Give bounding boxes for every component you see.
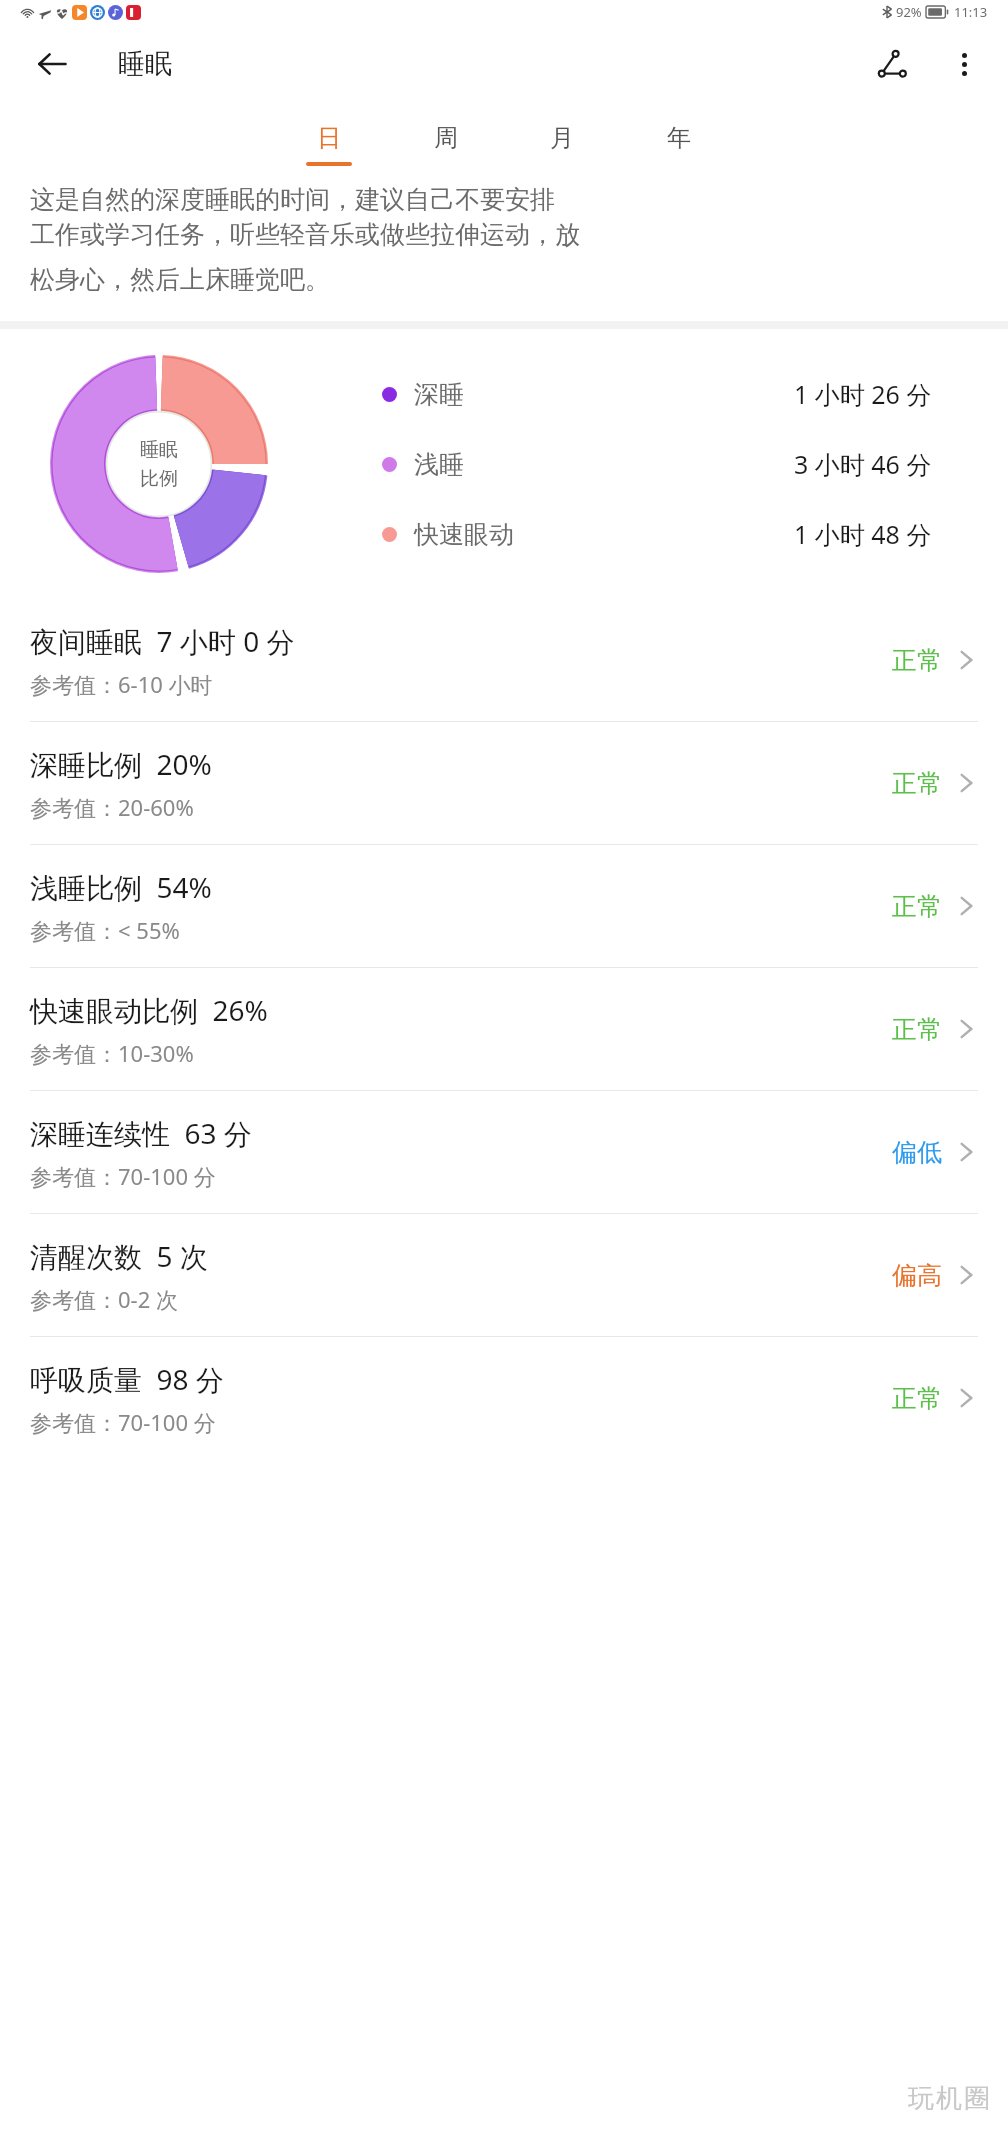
- button[interactable]: Share: [866, 38, 918, 90]
- button[interactable]: 日: [284, 104, 374, 184]
- staticText: 参考值：70-100 分: [30, 1407, 216, 1437]
- button[interactable]: 周: [401, 104, 491, 184]
- staticText: 睡眠: [118, 47, 172, 81]
- staticText: 浅睡比例 54%: [30, 868, 212, 906]
- staticText: 呼吸质量 98 分: [30, 1360, 224, 1398]
- button[interactable]: 月: [517, 104, 607, 184]
- staticText: 参考值：70-100 分: [30, 1161, 216, 1191]
- staticText: 参考值：< 55%: [30, 915, 180, 945]
- staticText: 日: [317, 123, 341, 153]
- staticText: 参考值：6-10 小时: [30, 669, 213, 699]
- staticText: 圈: [964, 2082, 990, 2115]
- staticText: 玩: [908, 2082, 934, 2115]
- staticText: 这是自然的深度睡眠的时间，建议自己不要安排: [30, 184, 555, 215]
- staticText: 92%: [896, 3, 922, 21]
- staticText: 睡眠: [140, 438, 178, 462]
- staticText: 偏高: [892, 1260, 942, 1291]
- staticText: 快速眼动比例 26%: [30, 991, 268, 1029]
- staticText: 周: [434, 123, 458, 153]
- button[interactable]: 夜间睡眠 7 小时 0 分: [0, 599, 1008, 721]
- staticText: 正常: [892, 891, 942, 922]
- button[interactable]: More options: [942, 42, 986, 86]
- staticText: 机: [936, 2082, 962, 2115]
- button[interactable]: 浅睡比例 54%: [0, 845, 1008, 967]
- button[interactable]: 快速眼动比例 26%: [0, 968, 1008, 1090]
- staticText: 夜间睡眠 7 小时 0 分: [30, 622, 295, 660]
- staticText: 参考值：0-2 次: [30, 1284, 178, 1314]
- staticText: 正常: [892, 1383, 942, 1414]
- button[interactable]: Back: [30, 42, 74, 86]
- staticText: 11:13: [954, 3, 988, 21]
- staticText: 1 小时 48 分: [794, 517, 932, 551]
- staticText: 快速眼动: [414, 519, 514, 550]
- staticText: 1 小时 26 分: [794, 377, 932, 411]
- staticText: 正常: [892, 768, 942, 799]
- staticText: 浅睡: [414, 449, 464, 480]
- staticText: 深睡: [414, 379, 464, 410]
- staticText: 正常: [892, 1014, 942, 1045]
- staticText: 工作或学习任务，听些轻音乐或做些拉伸运动，放 松身心，然后上床睡觉吧。: [30, 219, 580, 295]
- staticText: 深睡比例 20%: [30, 745, 212, 783]
- button[interactable]: 深睡比例 20%: [0, 722, 1008, 844]
- button[interactable]: 清醒次数 5 次: [0, 1214, 1008, 1336]
- staticText: 参考值：20-60%: [30, 792, 194, 822]
- button[interactable]: 深睡连续性 63 分: [0, 1091, 1008, 1213]
- button[interactable]: 年: [634, 104, 724, 184]
- staticText: 月: [550, 123, 574, 153]
- staticText: 清醒次数 5 次: [30, 1237, 208, 1275]
- staticText: 深睡连续性 63 分: [30, 1114, 252, 1152]
- staticText: 年: [667, 123, 691, 153]
- staticText: 比例: [140, 467, 178, 491]
- staticText: 参考值：10-30%: [30, 1038, 194, 1068]
- staticText: 3 小时 46 分: [794, 447, 932, 481]
- staticText: 偏低: [892, 1137, 942, 1168]
- staticText: 正常: [892, 645, 942, 676]
- button[interactable]: 呼吸质量 98 分: [0, 1337, 1008, 1459]
